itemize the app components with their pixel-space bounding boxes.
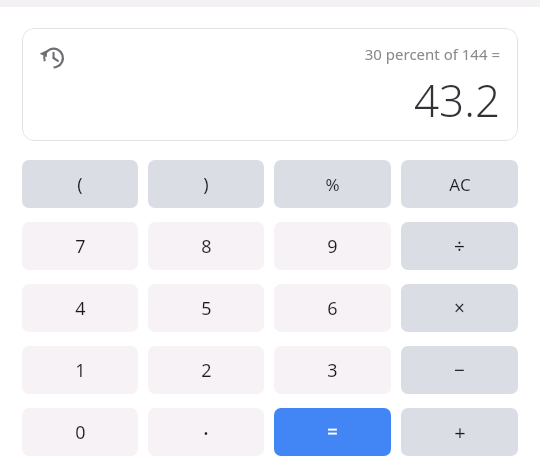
- staticText: 9: [327, 234, 338, 259]
- button[interactable]: ·: [148, 408, 264, 456]
- button[interactable]: −: [401, 346, 518, 394]
- staticText: 7: [75, 234, 86, 259]
- staticText: 43.2: [413, 70, 500, 130]
- staticText: 5: [201, 296, 212, 321]
- staticText: 4: [75, 296, 86, 321]
- staticText: =: [327, 419, 338, 445]
- staticText: +: [454, 419, 466, 446]
- staticText: 1: [75, 358, 86, 383]
- staticText: 8: [201, 234, 212, 259]
- button[interactable]: 9: [274, 222, 391, 270]
- staticText: ÷: [454, 233, 465, 259]
- button[interactable]: 2: [148, 346, 264, 394]
- button[interactable]: =: [274, 408, 391, 456]
- staticText: 3: [327, 358, 338, 383]
- staticText: 30 percent of 144 =: [364, 44, 500, 64]
- button[interactable]: 8: [148, 222, 264, 270]
- button[interactable]: 7: [22, 222, 138, 270]
- button[interactable]: 1: [22, 346, 138, 394]
- button[interactable]: AC: [401, 160, 518, 208]
- staticText: ·: [203, 417, 209, 447]
- staticText: AC: [449, 173, 471, 196]
- button[interactable]: History: [36, 42, 68, 74]
- button[interactable]: (: [22, 160, 138, 208]
- staticText: ): [203, 172, 209, 197]
- button[interactable]: ×: [401, 284, 518, 332]
- staticText: (: [77, 172, 83, 197]
- button[interactable]: +: [401, 408, 518, 456]
- staticText: %: [325, 173, 340, 196]
- button[interactable]: 3: [274, 346, 391, 394]
- button[interactable]: ): [148, 160, 264, 208]
- button[interactable]: %: [274, 160, 391, 208]
- staticText: 2: [201, 358, 212, 383]
- staticText: ×: [454, 295, 465, 321]
- button[interactable]: 4: [22, 284, 138, 332]
- staticText: −: [454, 357, 465, 383]
- staticText: 0: [75, 420, 86, 445]
- button[interactable]: 6: [274, 284, 391, 332]
- staticText: 6: [327, 296, 338, 321]
- button[interactable]: 5: [148, 284, 264, 332]
- button[interactable]: 0: [22, 408, 138, 456]
- button[interactable]: ÷: [401, 222, 518, 270]
